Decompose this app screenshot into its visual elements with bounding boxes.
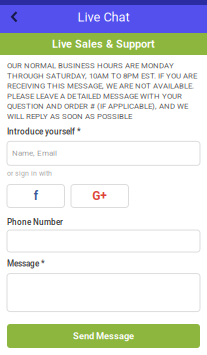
staticText: QUESTION AND ORDER # (IF APPLICABLE), AN… bbox=[7, 102, 188, 111]
button[interactable]: Send Message bbox=[7, 324, 200, 348]
staticText: Phone Number bbox=[7, 217, 63, 227]
staticText: PLEASE LEAVE A DETAILED MESSAGE WITH YOU… bbox=[7, 91, 182, 100]
staticText: G+ bbox=[92, 189, 107, 203]
staticText: f bbox=[34, 189, 38, 203]
staticText: Live Chat bbox=[77, 9, 129, 24]
staticText: RECEIVING THIS MESSAGE, WE ARE NOT AVAIL… bbox=[7, 81, 194, 90]
staticText: Message * bbox=[7, 259, 45, 268]
staticText: THROUGH SATURDAY, 10AM TO 8PM EST. IF YO… bbox=[7, 71, 197, 80]
staticText: WILL REPLY AS SOON AS POSSIBLE bbox=[7, 112, 132, 121]
staticText: or sign in with bbox=[7, 169, 52, 177]
button[interactable]: Sign in with Google bbox=[71, 184, 128, 207]
staticText: Name, Email bbox=[12, 148, 57, 158]
button[interactable]: Back bbox=[0, 5, 28, 33]
staticText: Send Message bbox=[73, 330, 134, 341]
staticText: OUR NORMAL BUSINESS HOURS ARE MONDAY bbox=[7, 61, 174, 70]
staticText: Live Sales & Support bbox=[52, 38, 155, 50]
button[interactable]: Sign in with Facebook bbox=[7, 184, 64, 207]
staticText: Introduce yourself * bbox=[7, 127, 81, 136]
